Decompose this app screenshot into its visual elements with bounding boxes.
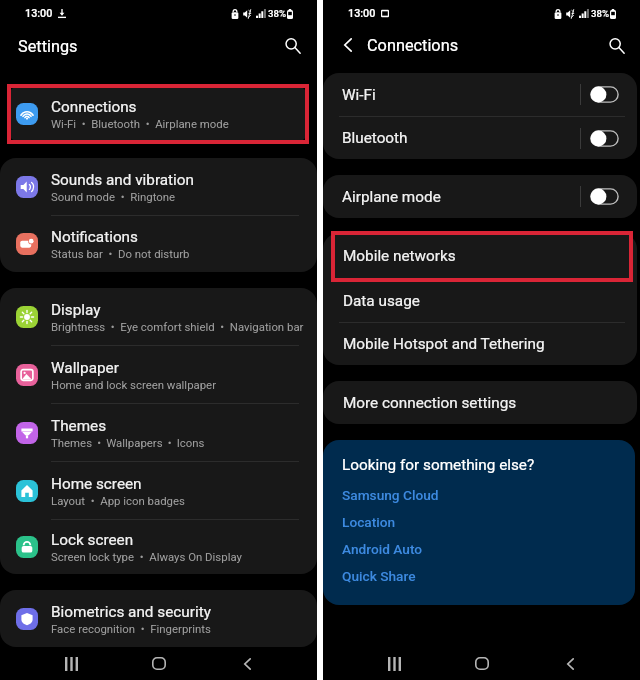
staticText: Sound mode • Ringtone	[51, 190, 176, 203]
staticText: 38%	[591, 8, 609, 19]
staticText: Biometrics and security	[51, 603, 211, 621]
button[interactable]: Samsung Cloud	[342, 481, 635, 508]
button[interactable]: Recent apps	[49, 647, 93, 680]
staticText: Status bar • Do not disturb	[51, 247, 190, 260]
staticText: Layout • App icon badges	[51, 494, 185, 507]
staticText: Samsung Cloud	[342, 487, 439, 503]
button[interactable]: Data usage	[323, 279, 637, 322]
button[interactable]: Bluetooth	[323, 117, 637, 159]
staticText: Looking for something else?	[342, 456, 535, 474]
staticText: Themes • Wallpapers • Icons	[51, 436, 205, 449]
button[interactable]: Toggle	[590, 130, 619, 147]
button[interactable]: Android Auto	[342, 535, 635, 562]
button[interactable]: Mobile networks	[323, 233, 637, 278]
button[interactable]: Sounds and vibration	[0, 158, 317, 215]
staticText: Wi-Fi • Bluetooth • Airplane mode	[51, 117, 229, 130]
staticText: Quick Share	[342, 568, 416, 584]
staticText: Settings	[18, 37, 78, 56]
button[interactable]: More connection settings	[323, 381, 637, 424]
staticText: Sounds and vibration	[51, 171, 195, 189]
staticText: Data usage	[343, 292, 420, 310]
button[interactable]: Home screen	[0, 462, 317, 519]
staticText: Bluetooth	[342, 129, 408, 147]
staticText: Brightness • Eye comfort shield • Naviga…	[51, 320, 304, 333]
staticText: Mobile networks	[343, 247, 456, 265]
staticText: More connection settings	[343, 394, 517, 412]
staticText: 13:00	[348, 7, 376, 20]
button[interactable]: Mobile Hotspot and Tethering	[323, 323, 637, 365]
staticText: 13:00	[25, 7, 53, 20]
button[interactable]: Themes	[0, 404, 317, 461]
staticText: Face recognition • Fingerprints	[51, 622, 211, 635]
staticText: Home and lock screen wallpaper	[51, 378, 217, 391]
staticText: 38%	[268, 8, 286, 19]
button[interactable]: Recent apps	[372, 647, 416, 680]
button[interactable]: Toggle	[590, 86, 619, 103]
staticText: Airplane mode	[342, 188, 441, 206]
staticText: Connections	[51, 98, 137, 116]
button[interactable]: Connections	[7, 85, 309, 143]
staticText: Display	[51, 301, 101, 319]
button[interactable]: Search	[604, 33, 628, 57]
button[interactable]: Toggle	[590, 188, 619, 205]
button[interactable]: Search	[280, 33, 304, 57]
staticText: Location	[342, 514, 396, 530]
staticText: Screen lock type • Always On Display	[51, 550, 242, 563]
staticText: Wi-Fi	[342, 86, 376, 104]
button[interactable]: Wallpaper	[0, 346, 317, 403]
button[interactable]: Back	[548, 647, 592, 680]
staticText: Mobile Hotspot and Tethering	[343, 335, 545, 353]
button[interactable]: Wi-Fi	[323, 73, 637, 116]
button[interactable]: Home	[137, 647, 181, 680]
button[interactable]: Location	[342, 508, 635, 535]
button[interactable]: Home	[460, 647, 504, 680]
staticText: Themes	[51, 417, 107, 435]
button[interactable]: Biometrics and security	[0, 590, 317, 647]
staticText: Notifications	[51, 228, 138, 246]
button[interactable]: Back	[225, 647, 269, 680]
staticText: Lock screen	[51, 531, 134, 549]
staticText: Android Auto	[342, 541, 423, 557]
staticText: Home screen	[51, 475, 142, 493]
button[interactable]: Display	[0, 288, 317, 345]
button[interactable]: Quick Share	[342, 562, 635, 589]
button[interactable]: Airplane mode	[323, 175, 637, 218]
button[interactable]: Back	[337, 34, 359, 56]
button[interactable]: Lock screen	[0, 520, 317, 574]
button[interactable]: Notifications	[0, 216, 317, 272]
staticText: Wallpaper	[51, 359, 119, 377]
staticText: Connections	[367, 36, 459, 55]
